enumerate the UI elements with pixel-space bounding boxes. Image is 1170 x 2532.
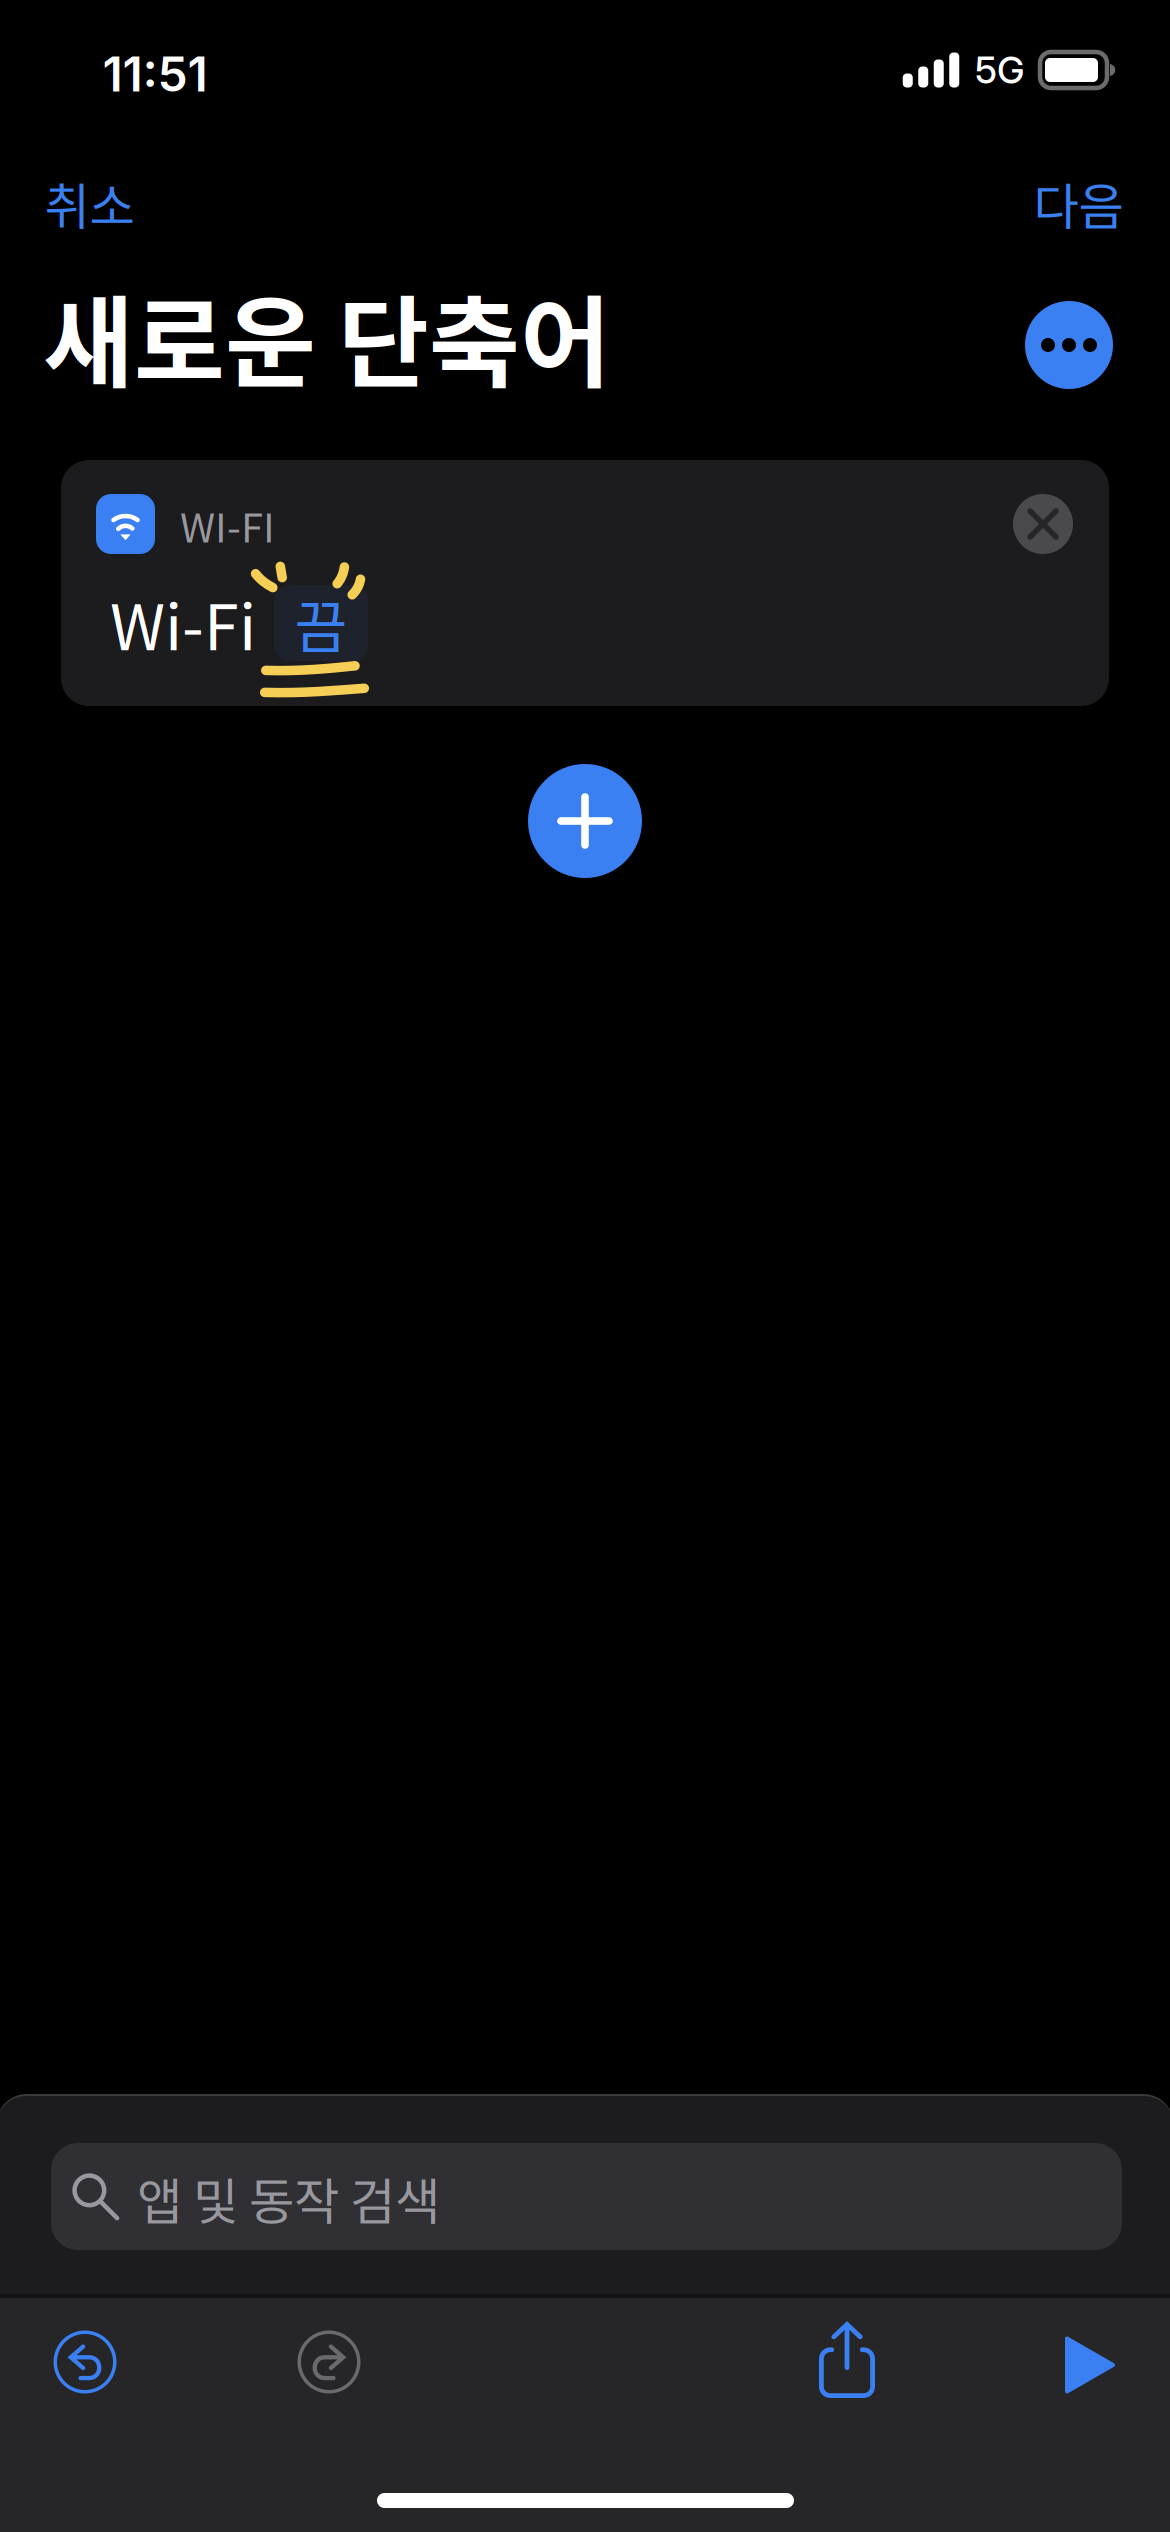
staticText: 취소 (44, 167, 134, 239)
button[interactable]: 공유 (781, 2294, 913, 2426)
staticText: 11:51 (102, 45, 207, 103)
staticText: WI-FI (180, 496, 275, 554)
button[interactable]: 동작 추가 (505, 741, 665, 901)
button[interactable]: 취소 (17, 157, 162, 249)
button[interactable]: 실행 취소 (19, 2296, 151, 2428)
staticText: 새로운 단축어 (43, 265, 611, 407)
button[interactable]: 더 보기 (1003, 279, 1135, 411)
button[interactable]: 실행 (1024, 2299, 1156, 2431)
staticText: 끔 (294, 581, 347, 664)
staticText: 앱 및 동작 검색 (137, 2162, 440, 2234)
button[interactable]: 다음 (1006, 157, 1151, 249)
staticText: Wi-Fi (110, 578, 256, 668)
button[interactable]: 다시 실행 (263, 2296, 395, 2428)
staticText: 다음 (1033, 167, 1123, 239)
button[interactable]: 앱 및 동작 검색 (51, 2143, 1122, 2250)
button[interactable]: 동작 삭제 (993, 474, 1093, 574)
staticText: 5G (975, 47, 1024, 93)
